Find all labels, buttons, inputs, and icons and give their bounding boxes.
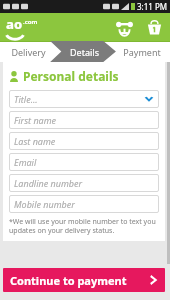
button[interactable]: Mobile number: [9, 195, 159, 213]
staticText: 3:11 PM: [137, 1, 168, 12]
staticText: Personal details: [23, 68, 119, 84]
staticText: ao: [6, 15, 23, 33]
staticText: Mobile number: [14, 198, 75, 210]
button[interactable]: Landline number: [9, 174, 159, 192]
button[interactable]: Email: [9, 153, 159, 171]
button[interactable]: Continue to payment: [3, 268, 165, 292]
other: Open title list: [144, 96, 154, 103]
staticText: Title...: [14, 93, 38, 105]
staticText: Landline number: [14, 177, 83, 189]
staticText: First name: [14, 114, 57, 126]
button[interactable]: First name: [9, 111, 159, 129]
staticText: Payment: [123, 46, 161, 58]
button[interactable]: Details: [56, 41, 113, 62]
staticText: *We will use your mobile number to text …: [9, 217, 156, 235]
button[interactable]: Title...: [9, 90, 159, 108]
button[interactable]: Payment: [113, 41, 170, 62]
staticText: Details: [70, 46, 99, 58]
button[interactable]: Last name: [9, 132, 159, 150]
staticText: Last name: [14, 135, 56, 147]
button[interactable]: Basket, 1 item: [144, 17, 164, 37]
staticText: .com: [23, 18, 38, 26]
staticText: Delivery: [11, 46, 46, 58]
button[interactable]: ao.com home: [6, 15, 24, 40]
staticText: Continue to payment: [10, 273, 127, 288]
button[interactable]: Call us: [114, 17, 134, 37]
button[interactable]: Delivery: [0, 41, 56, 62]
staticText: Email: [14, 156, 37, 168]
